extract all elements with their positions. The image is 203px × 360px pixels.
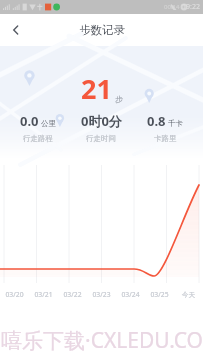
staticText: 0.8 [147,112,166,130]
staticText: 步 [115,94,123,104]
staticText: 03/24 [116,290,145,299]
staticText: 卡路里 [154,134,177,143]
staticText: 嘻乐下载·CXLEDU.CO [1,326,203,355]
staticText: 03/23 [87,290,116,299]
staticText: 0时0分 [81,112,122,130]
button[interactable]: 0.0 [6,112,69,143]
staticText: 步数记录 [79,23,125,37]
staticText: 03/22 [58,290,87,299]
button[interactable]: 0时0分 [69,112,133,143]
button[interactable]: 0.8 [133,112,197,143]
staticText: 0.0 [20,112,39,130]
staticText: 00:14 [164,3,180,11]
staticText: 21 [81,70,112,107]
staticText: 今天 [174,290,203,299]
staticText: 19:22 [182,2,200,12]
staticText: 03/20 [0,290,29,299]
staticText: 千卡 [168,119,183,128]
staticText: 公里 [41,119,56,128]
button[interactable]: Back [0,14,32,46]
staticText: 03/21 [29,290,58,299]
staticText: 行走路程 [23,134,53,143]
staticText: 03/25 [145,290,174,299]
staticText: 行走时间 [86,134,116,143]
